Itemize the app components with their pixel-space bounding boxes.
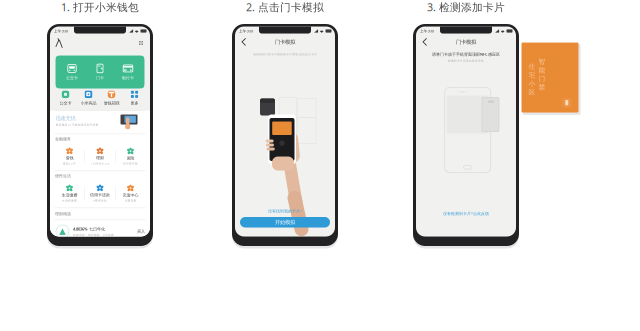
button[interactable]: 生活缴费 bbox=[54, 184, 84, 202]
staticText: 金融服务 bbox=[55, 136, 71, 141]
staticText: 最高20万 bbox=[63, 162, 76, 165]
staticText: 7日年化4.5% bbox=[91, 162, 109, 165]
staticText: 借钱花呗 bbox=[103, 101, 119, 106]
staticText: 门卡 bbox=[96, 75, 104, 80]
staticText: 2. 点击门卡模拟 bbox=[246, 0, 324, 14]
staticText: 百万医疗险 bbox=[123, 162, 138, 165]
staticText: 宅 bbox=[528, 71, 535, 79]
button[interactable]: 借钱 bbox=[54, 147, 84, 165]
button[interactable]: 充值中心 bbox=[115, 184, 145, 202]
staticText: 选择您的门禁卡片模拟的卡片类型,或自定义卡片 bbox=[253, 52, 317, 56]
button[interactable]: 买入 bbox=[137, 229, 145, 234]
button[interactable]: 门卡 bbox=[86, 63, 114, 81]
button[interactable]: 没有检测到卡片?点此反馈 bbox=[416, 209, 516, 217]
button[interactable]: Profile bbox=[53, 37, 65, 49]
staticText: 0费率还款 bbox=[93, 199, 107, 202]
button[interactable]: 没有找到我的卡片? bbox=[268, 207, 302, 215]
staticText: 话费流量 bbox=[124, 199, 136, 202]
button[interactable]: 小米有品 bbox=[77, 90, 100, 105]
button[interactable]: 银行卡 bbox=[114, 63, 142, 81]
staticText: 请将门卡放于手机背面顶部NFC感应区 bbox=[432, 51, 500, 57]
staticText: 信用卡还款 bbox=[90, 193, 110, 197]
staticText: 水电煤缴费 bbox=[62, 199, 77, 202]
staticText: 小 bbox=[528, 80, 535, 88]
staticText: 开始模拟 bbox=[275, 219, 295, 226]
button[interactable]: 开始模拟 bbox=[240, 217, 330, 227]
staticText: 住 bbox=[528, 62, 535, 71]
staticText: 门卡模拟 bbox=[456, 39, 476, 45]
staticText: 充值中心 bbox=[122, 193, 138, 198]
staticText: 检测到卡片后请勿移动手机 bbox=[448, 59, 484, 63]
staticText: 借钱 bbox=[65, 156, 73, 160]
staticText: 禁 bbox=[538, 83, 545, 91]
staticText: 上午9:41 bbox=[53, 28, 68, 34]
staticText: 便民生活 bbox=[55, 173, 71, 178]
button[interactable]: Back bbox=[419, 36, 431, 48]
button[interactable]: More bbox=[135, 37, 147, 49]
staticText: 没有找到我的卡片? bbox=[268, 208, 302, 214]
staticText: 公交卡 bbox=[66, 75, 78, 80]
button[interactable]: 信用卡还款 bbox=[85, 184, 115, 202]
button[interactable]: 公交卡 bbox=[58, 63, 86, 81]
staticText: 银行卡 bbox=[122, 75, 134, 80]
staticText: 上午9:41 bbox=[419, 28, 434, 34]
staticText: 上午9:41 bbox=[238, 28, 253, 34]
staticText: 智 bbox=[538, 57, 545, 66]
button[interactable]: 公交卡 bbox=[54, 90, 77, 105]
staticText: 没有检测到卡片?点此反馈 bbox=[443, 211, 489, 216]
staticText: 3. 检测添加卡片 bbox=[427, 0, 505, 14]
staticText: 门 bbox=[538, 75, 545, 83]
staticText: 迅速无忧 bbox=[55, 115, 75, 122]
button[interactable]: 更多 bbox=[123, 90, 146, 105]
staticText: 1. 打开小米钱包 bbox=[61, 0, 139, 14]
staticText: 4.8036% 七日年化 bbox=[73, 226, 105, 232]
staticText: 公交卡 bbox=[59, 101, 71, 106]
staticText: 小米有品 bbox=[80, 101, 96, 106]
button[interactable]: 借钱花呗 bbox=[100, 90, 123, 105]
staticText: 能 bbox=[538, 66, 545, 74]
staticText: 生活缴费 bbox=[61, 193, 77, 198]
staticText: 门卡模拟 bbox=[275, 39, 295, 45]
staticText: 理财 bbox=[96, 156, 104, 160]
staticText: 最高额度20万随借随还免手续费 bbox=[55, 123, 98, 126]
staticText: 理财精选 bbox=[55, 211, 71, 216]
staticText: 更多 bbox=[130, 101, 138, 106]
staticText: 稳健理财 · 随存随取 · 0手续费 bbox=[73, 233, 114, 237]
staticText: 买入 bbox=[137, 229, 145, 234]
staticText: 保险 bbox=[126, 156, 134, 161]
button[interactable]: 理财 bbox=[85, 147, 115, 165]
button[interactable]: Back bbox=[238, 36, 250, 48]
staticText: 区 bbox=[528, 88, 535, 96]
button[interactable]: 保险 bbox=[115, 147, 145, 165]
